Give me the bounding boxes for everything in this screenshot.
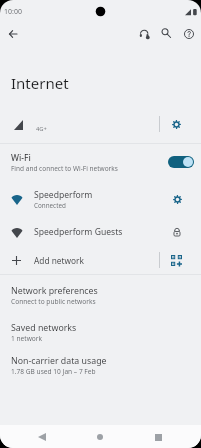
button[interactable]: Network details [165,187,189,211]
staticText: Non-carrier data usage [11,355,107,367]
staticText: 1.78 GB used 10 Jan – 7 Feb [11,367,96,376]
button[interactable]: Saved networks [0,316,201,348]
button[interactable]: Mobile network settings [163,111,189,137]
staticText: 4G+ [36,125,47,133]
button[interactable]: Add network with QR code [163,247,189,273]
button[interactable]: Wi-Fi [0,147,201,177]
staticText: 10:00 [4,7,22,17]
button[interactable]: Add network [0,246,201,274]
button[interactable]: Non-carrier data usage [0,349,201,381]
button[interactable]: Help [178,23,200,45]
button[interactable]: Home [90,427,110,447]
staticText: Speedperform Guests [34,226,123,238]
button[interactable]: 4G+ [0,107,201,143]
button[interactable]: Secured network [165,220,189,244]
button[interactable]: Back [2,23,24,45]
staticText: 1 network [11,334,43,343]
staticText: Internet [11,73,69,93]
button[interactable]: Support [133,23,155,45]
staticText: Network preferences [11,285,98,297]
staticText: Connected [34,201,66,210]
staticText: Saved networks [11,322,77,334]
staticText: Add network [34,255,84,266]
button[interactable]: Speedperform [0,183,201,215]
staticText: Speedperform [34,189,93,201]
staticText: Connect to public networks [11,297,96,306]
button[interactable]: Recent apps [148,427,168,447]
button[interactable]: Search [155,22,177,44]
staticText: Wi-Fi [11,152,31,164]
button[interactable]: Speedperform Guests [0,216,201,248]
staticText: Find and connect to Wi-Fi networks [11,164,118,173]
button[interactable]: Back [32,427,52,447]
button[interactable]: Network preferences [0,279,201,311]
